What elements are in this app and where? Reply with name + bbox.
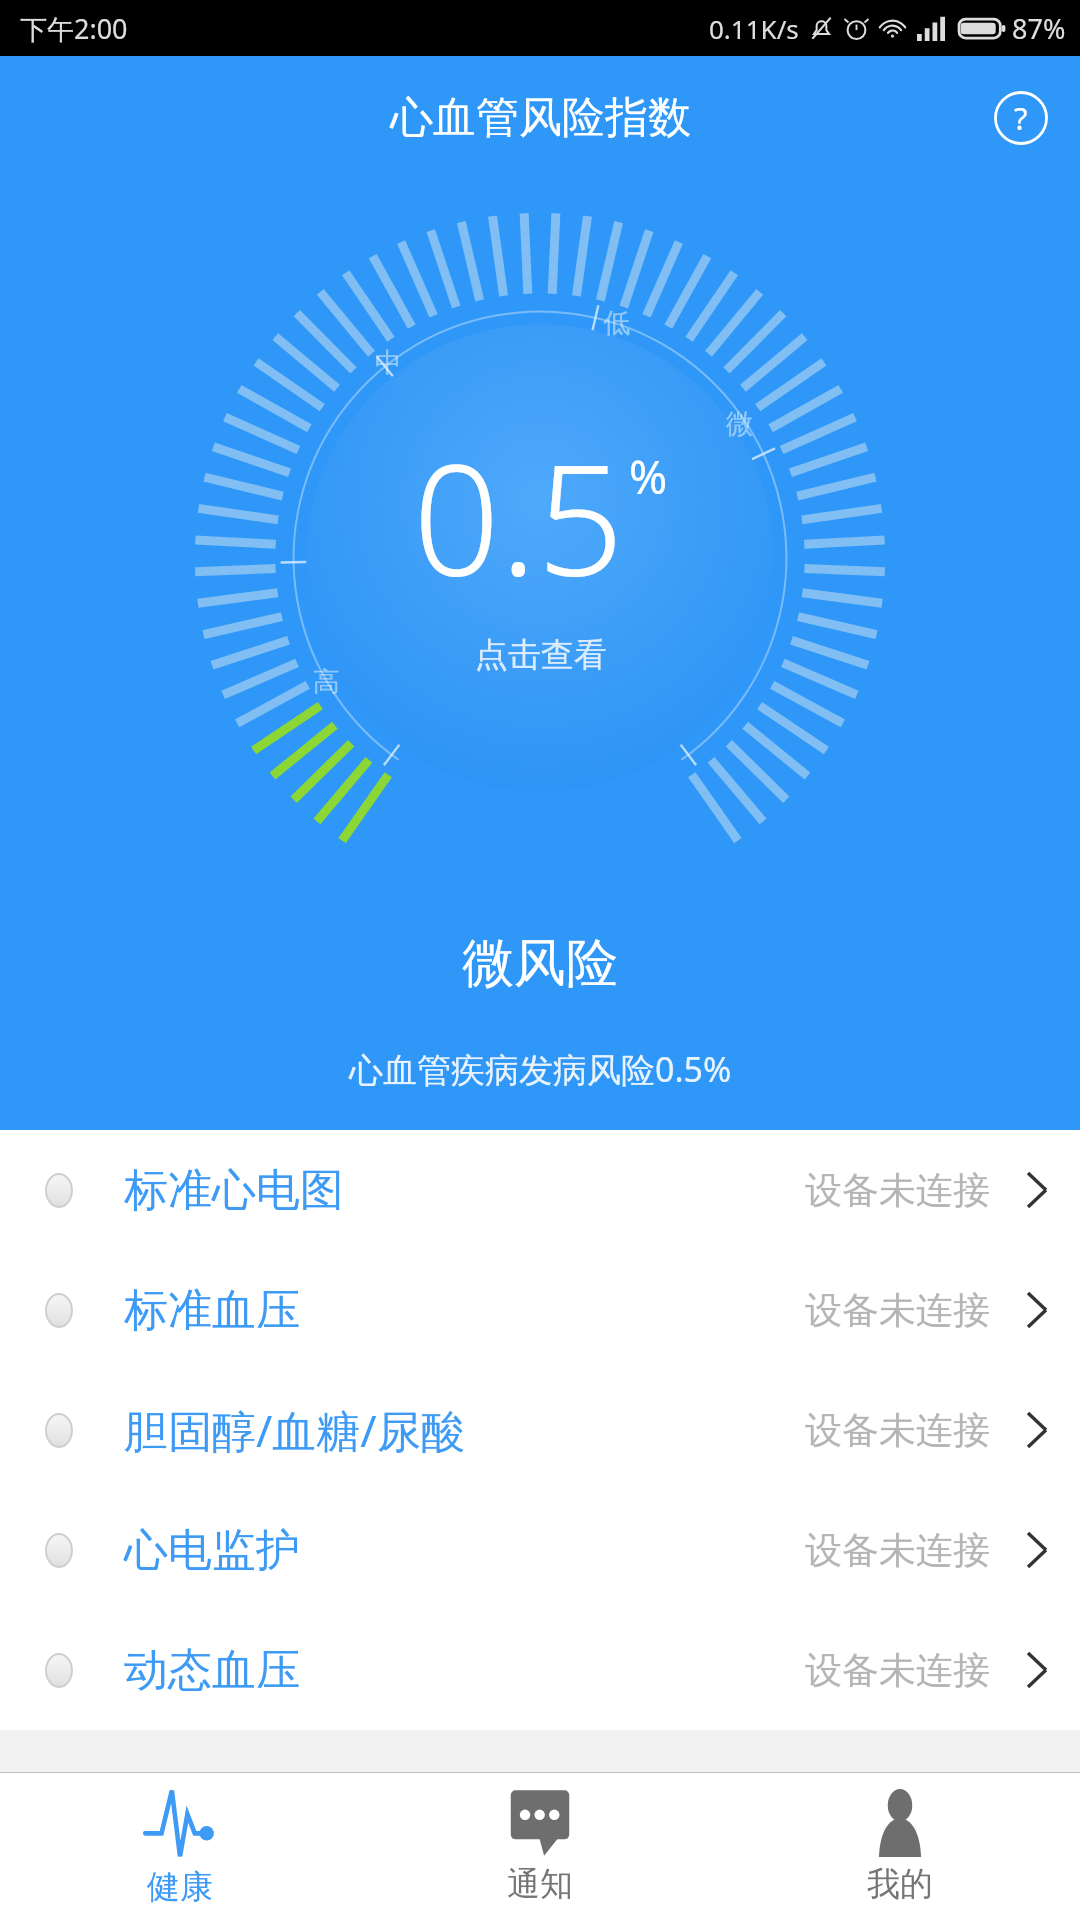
staticText: 健康 <box>147 1866 213 1908</box>
staticText: 设备未连接 <box>805 1647 990 1694</box>
staticText: 标准血压 <box>124 1283 300 1338</box>
staticText: 设备未连接 <box>805 1527 990 1574</box>
staticText: 动态血压 <box>124 1643 300 1698</box>
staticText: 心血管风险指数 <box>390 91 691 145</box>
staticText: 我的 <box>867 1863 933 1905</box>
button[interactable]: 健康 <box>0 1773 360 1920</box>
staticText: 中 <box>375 346 402 380</box>
button[interactable]: 我的 <box>720 1773 1080 1920</box>
staticText: 下午2:00 <box>20 10 128 47</box>
button[interactable]: 标准心电图 <box>0 1130 1080 1250</box>
button[interactable]: 通知 <box>360 1773 720 1920</box>
staticText: 微 <box>726 407 753 441</box>
staticText: 心电监护 <box>124 1523 300 1578</box>
staticText: 设备未连接 <box>805 1167 990 1214</box>
staticText: % <box>629 445 668 508</box>
staticText: 87% <box>1012 10 1066 47</box>
staticText: 高 <box>313 665 340 699</box>
staticText: 设备未连接 <box>805 1287 990 1334</box>
staticText: 标准心电图 <box>124 1163 344 1218</box>
button[interactable]: Help <box>992 89 1050 147</box>
button[interactable]: 心电监护 <box>0 1490 1080 1610</box>
button[interactable]: 标准血压 <box>0 1250 1080 1370</box>
staticText: 心血管疾病发病风险0.5% <box>349 1046 732 1092</box>
staticText: 设备未连接 <box>805 1407 990 1454</box>
staticText: 微风险 <box>462 931 618 997</box>
button[interactable]: 高 <box>190 208 890 908</box>
staticText: 低 <box>603 306 630 340</box>
staticText: 通知 <box>507 1863 573 1905</box>
button[interactable]: 胆固醇/血糖/尿酸 <box>0 1370 1080 1490</box>
staticText: ? <box>1014 97 1028 139</box>
staticText: 点击查看 <box>475 634 607 676</box>
staticText: 0.5 <box>413 413 624 620</box>
button[interactable]: 动态血压 <box>0 1610 1080 1730</box>
staticText: 0.11K/s <box>709 11 799 46</box>
staticText: 胆固醇/血糖/尿酸 <box>124 1400 465 1460</box>
